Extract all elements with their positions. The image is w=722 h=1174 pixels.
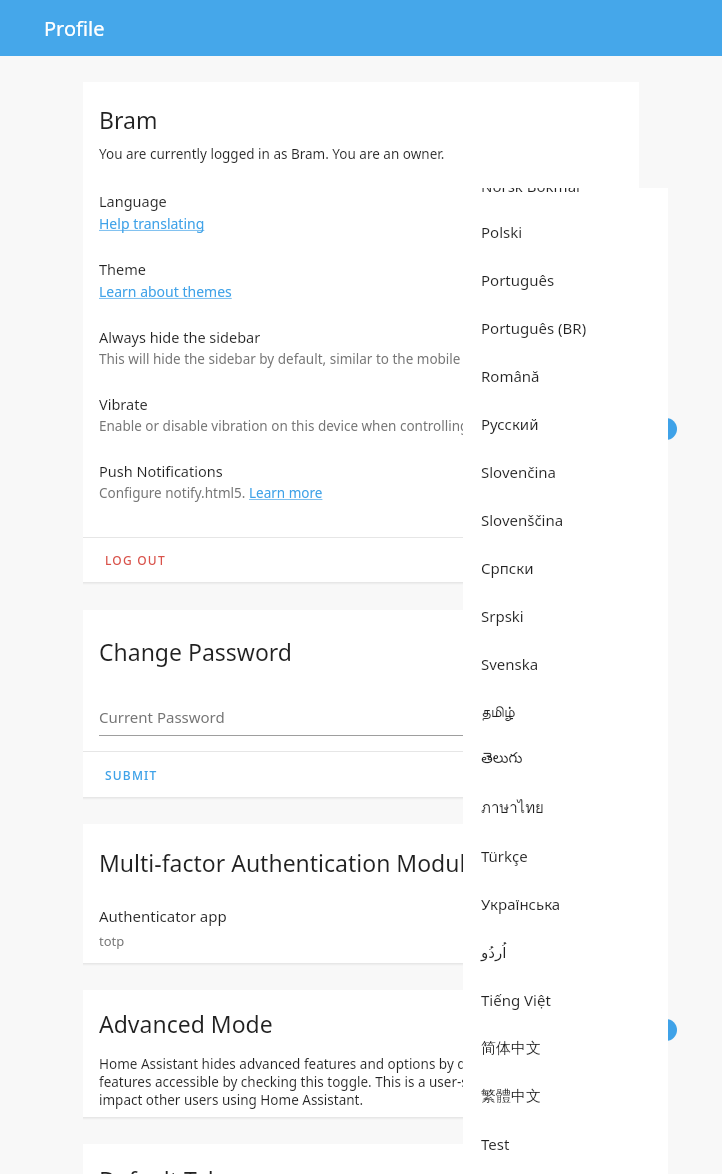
staticText: Default Tab xyxy=(99,1164,223,1174)
button[interactable]: Português xyxy=(463,256,668,304)
staticText: Slovenščina xyxy=(481,510,564,530)
staticText: Русский xyxy=(481,414,539,434)
staticText: Multi-factor Authentication Modules xyxy=(99,847,490,878)
button[interactable]: Tiếng Việt xyxy=(463,976,668,1024)
button[interactable]: Learn more xyxy=(249,484,323,502)
staticText: SUBMIT xyxy=(105,767,158,783)
staticText: LOG OUT xyxy=(105,552,166,568)
staticText: తెలుగు xyxy=(481,750,523,770)
staticText: Learn about themes xyxy=(99,282,232,301)
button[interactable]: Slovenščina xyxy=(463,496,668,544)
staticText: Svenska xyxy=(481,654,539,674)
staticText: Always hide the sidebar xyxy=(99,327,261,347)
button[interactable]: Русский xyxy=(463,400,668,448)
staticText: Norsk Bokmål xyxy=(481,188,580,196)
staticText: Change Password xyxy=(99,636,292,667)
staticText: You are currently logged in as Bram. You… xyxy=(99,145,445,163)
staticText: totp xyxy=(99,932,125,950)
button[interactable]: Polski xyxy=(463,208,668,256)
button[interactable]: Slovenčina xyxy=(463,448,668,496)
staticText: This will hide the sidebar by default, s… xyxy=(99,350,538,368)
staticText: தமிழ் xyxy=(481,705,515,720)
staticText: Enable or disable vibration on this devi… xyxy=(99,417,523,435)
staticText: Configure notify.html5. xyxy=(99,484,249,502)
staticText: Profile xyxy=(44,15,105,42)
button[interactable]: Svenska xyxy=(463,640,668,688)
staticText: Português xyxy=(481,270,555,290)
button[interactable]: Português (BR) xyxy=(463,304,668,352)
button[interactable]: తెలుగు xyxy=(463,736,668,784)
staticText: Bram xyxy=(99,104,158,135)
staticText: Português (BR) xyxy=(481,318,587,338)
staticText: Slovenčina xyxy=(481,462,556,482)
staticText: Test xyxy=(481,1134,510,1154)
staticText: Vibrate xyxy=(99,394,148,414)
staticText: Language xyxy=(99,191,167,211)
staticText: Current Password xyxy=(99,707,225,727)
staticText: Українська xyxy=(481,894,561,914)
staticText: Polski xyxy=(481,222,523,242)
staticText: Home Assistant hides advanced features a… xyxy=(99,1055,639,1109)
button[interactable]: Українська xyxy=(463,880,668,928)
staticText: Advanced Mode xyxy=(99,1008,273,1039)
button[interactable]: தமிழ் xyxy=(463,688,668,736)
button[interactable]: Türkçe xyxy=(463,832,668,880)
button[interactable]: 繁體中文 xyxy=(463,1072,668,1120)
button[interactable]: 简体中文 xyxy=(463,1024,668,1072)
button[interactable]: Help translating xyxy=(99,214,205,233)
staticText: Authenticator app xyxy=(99,906,227,926)
button[interactable]: Learn about themes xyxy=(99,282,232,301)
button[interactable]: Toggle xyxy=(655,1019,677,1041)
staticText: 繁體中文 xyxy=(481,1087,541,1106)
staticText: ภาษาไทย xyxy=(481,796,544,820)
staticText: 简体中文 xyxy=(481,1039,541,1058)
button[interactable]: Toggle xyxy=(655,418,677,440)
staticText: Theme xyxy=(99,259,146,279)
staticText: Türkçe xyxy=(481,846,528,866)
staticText: Српски xyxy=(481,558,534,578)
staticText: Srpski xyxy=(481,606,524,626)
staticText: Learn more xyxy=(249,484,323,502)
button[interactable]: Română xyxy=(463,352,668,400)
button[interactable]: Srpski xyxy=(463,592,668,640)
staticText: اُردُو xyxy=(481,944,507,961)
button[interactable]: Српски xyxy=(463,544,668,592)
staticText: Help translating xyxy=(99,214,205,233)
button[interactable]: SUBMIT xyxy=(83,752,639,797)
button[interactable]: اُردُو xyxy=(463,928,668,976)
button[interactable]: ภาษาไทย xyxy=(463,784,668,832)
staticText: Română xyxy=(481,366,540,386)
staticText: Push Notifications xyxy=(99,461,223,481)
staticText: Tiếng Việt xyxy=(481,990,551,1010)
button[interactable]: Test xyxy=(463,1120,668,1168)
button[interactable]: LOG OUT xyxy=(83,538,639,582)
